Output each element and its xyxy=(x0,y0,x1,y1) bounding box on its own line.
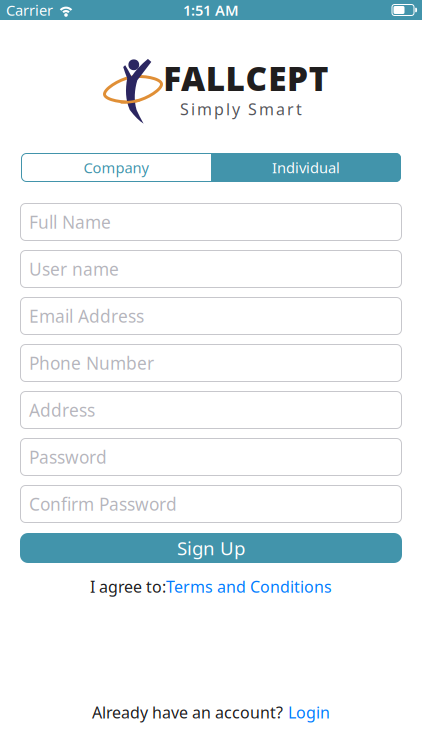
staticText: User name xyxy=(29,257,119,280)
staticText: Confirm Password xyxy=(29,492,177,515)
button[interactable]: Login xyxy=(288,702,330,723)
staticText: I agree to: xyxy=(90,576,166,597)
button[interactable]: Company xyxy=(21,153,211,182)
staticText: Address xyxy=(29,398,95,421)
textField[interactable]: Full Name xyxy=(29,210,402,233)
staticText: Login xyxy=(288,702,330,723)
staticText: Individual xyxy=(272,158,340,177)
staticText: Password xyxy=(29,445,107,468)
staticText: Password xyxy=(29,445,107,468)
staticText: 1:51 AM xyxy=(183,0,239,20)
staticText: Terms and Conditions xyxy=(166,576,332,597)
staticText: Address xyxy=(29,398,95,421)
staticText: Sign Up xyxy=(177,536,245,560)
staticText: Full Name xyxy=(29,210,111,233)
staticText: Confirm Password xyxy=(29,492,177,515)
button[interactable]: Terms and Conditions xyxy=(166,576,332,597)
button[interactable]: Sign Up xyxy=(20,533,402,563)
textField[interactable]: Confirm Password xyxy=(29,492,402,515)
staticText: Phone Number xyxy=(29,351,154,374)
staticText: Phone Number xyxy=(29,351,154,374)
button[interactable]: Individual xyxy=(211,153,401,182)
textField[interactable]: User name xyxy=(29,257,402,280)
staticText: Full Name xyxy=(29,210,111,233)
staticText: User name xyxy=(29,257,119,280)
textField[interactable]: Address xyxy=(29,398,402,421)
staticText: Already have an account? xyxy=(92,702,283,723)
staticText: S i m p l y S m a r t xyxy=(180,98,302,120)
staticText: Email Address xyxy=(29,304,144,327)
staticText: Email Address xyxy=(29,304,144,327)
staticText: FALLCEPT xyxy=(163,56,329,100)
textField[interactable]: Phone Number xyxy=(29,351,402,374)
textField[interactable]: Email Address xyxy=(29,304,402,327)
textField[interactable]: Password xyxy=(29,445,402,468)
staticText: Carrier xyxy=(6,0,53,20)
staticText: Company xyxy=(83,158,148,177)
